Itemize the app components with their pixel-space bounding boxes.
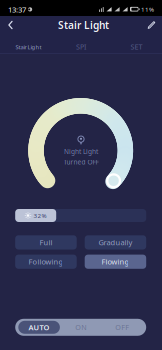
staticText: Gradually xyxy=(98,237,132,247)
staticText: Turned OFF xyxy=(63,158,98,166)
button[interactable]: Following xyxy=(15,255,77,269)
staticText: Following xyxy=(28,257,63,267)
button[interactable]: SET xyxy=(108,34,162,53)
button[interactable]: OFF xyxy=(101,321,143,334)
button[interactable]: Gradually xyxy=(85,235,146,249)
staticText: 13:37 xyxy=(8,4,26,15)
staticText: Full xyxy=(39,237,52,247)
staticText: SPI xyxy=(76,42,86,52)
staticText: OFF xyxy=(115,322,129,332)
button[interactable]: Full xyxy=(15,235,77,249)
button[interactable]: ON xyxy=(60,321,101,334)
staticText: 32% xyxy=(33,211,46,220)
button[interactable]: AUTO xyxy=(18,321,60,334)
staticText: Flowing xyxy=(101,257,129,267)
button[interactable]: Stair Light xyxy=(0,34,54,53)
staticText: 11% xyxy=(141,5,154,14)
staticText: SET xyxy=(130,42,142,52)
button[interactable]: Back xyxy=(2,16,19,34)
button[interactable]: SPI xyxy=(54,34,108,53)
button[interactable]: Edit xyxy=(143,16,160,34)
staticText: Stair Light xyxy=(58,18,109,32)
staticText: Night Light xyxy=(64,147,98,156)
staticText: AUTO xyxy=(29,322,50,332)
button[interactable]: Flowing xyxy=(85,255,146,269)
staticText: ON xyxy=(75,322,86,332)
staticText: Stair Light xyxy=(16,43,42,51)
